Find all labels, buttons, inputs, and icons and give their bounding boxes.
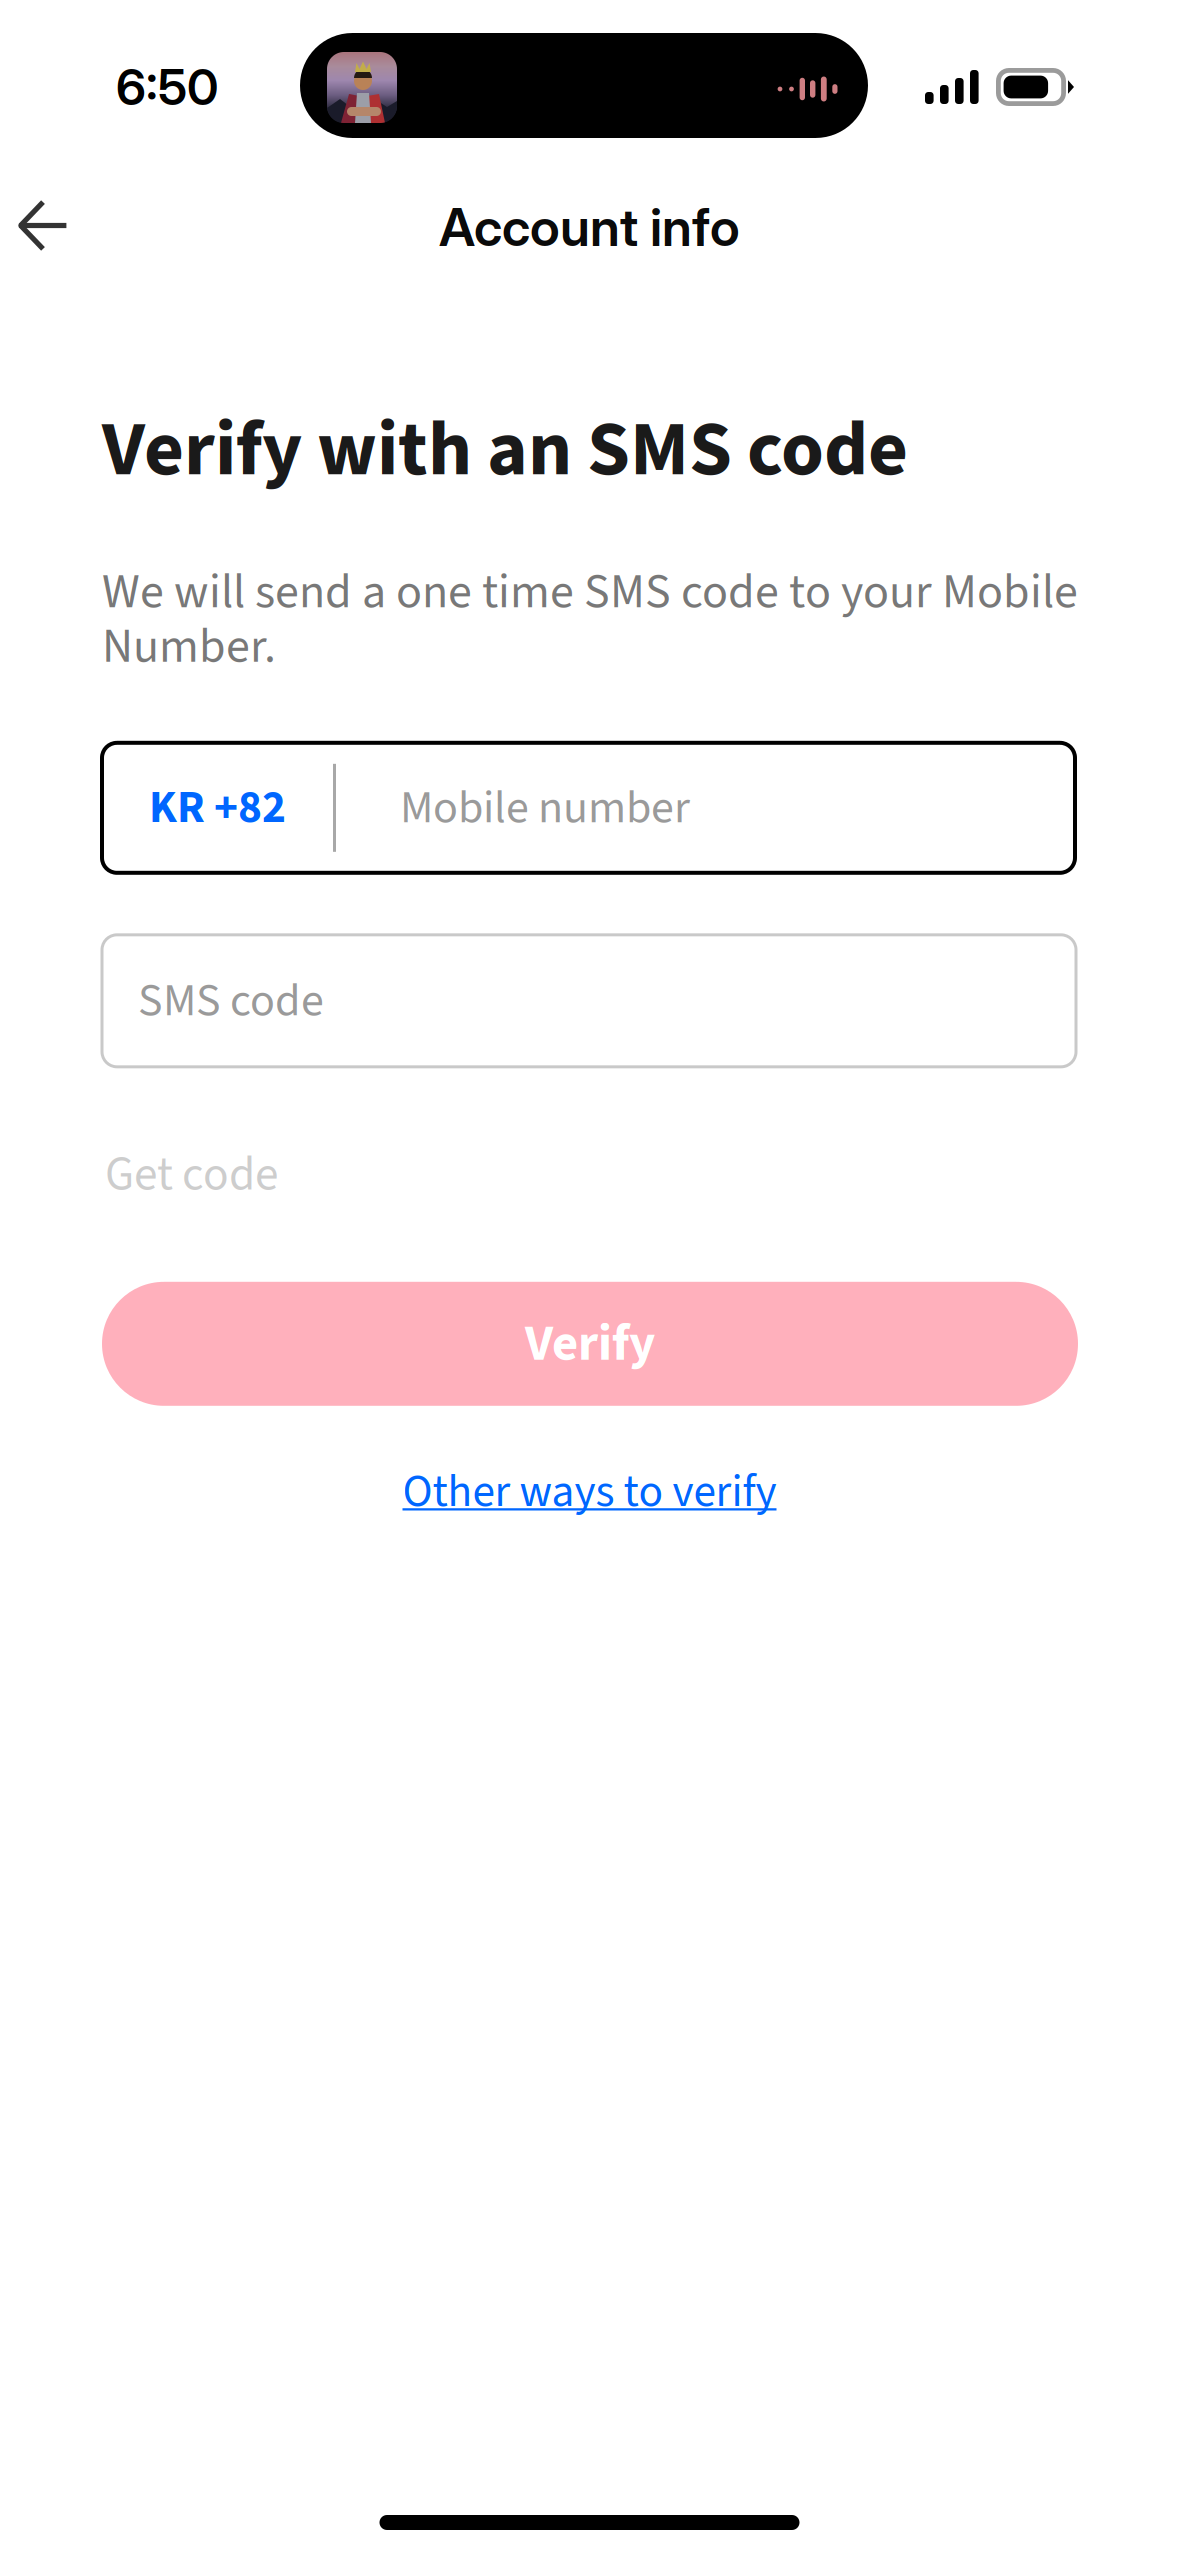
staticText: We will send a one time SMS code to your… — [102, 558, 1078, 681]
staticText: Mobile number — [400, 775, 690, 841]
staticText: KR +82 — [149, 776, 286, 840]
staticText: 6:50 — [116, 57, 218, 117]
button[interactable]: KR +82 — [102, 743, 1075, 873]
staticText: Other ways to verify — [402, 1460, 776, 1524]
button[interactable]: Get code — [0, 1153, 1179, 1197]
staticText: SMS code — [138, 968, 324, 1034]
staticText: Verify with an SMS code — [102, 395, 908, 505]
button[interactable]: Verify — [102, 1282, 1078, 1406]
button[interactable]: Back — [0, 182, 88, 272]
button[interactable]: Other ways to verify — [0, 1466, 1179, 1518]
staticText: Verify — [525, 1308, 655, 1380]
staticText: Get code — [105, 1141, 278, 1208]
staticText: Account info — [439, 195, 740, 258]
button[interactable]: SMS code — [102, 935, 1076, 1067]
